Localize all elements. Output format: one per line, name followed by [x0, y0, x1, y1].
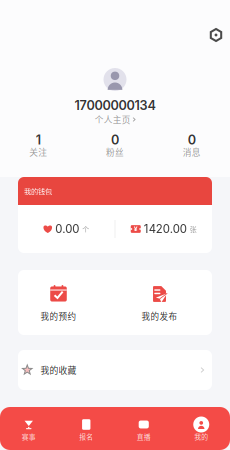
staticText: 直播 — [137, 432, 151, 441]
staticText: 0 — [111, 132, 119, 148]
staticText: 个人主页 — [95, 113, 131, 126]
staticText: 0.00 — [55, 222, 79, 236]
staticText: 我的 — [194, 432, 208, 441]
staticText: 报名 — [79, 432, 93, 441]
staticText: 我的预约 — [40, 310, 76, 322]
button[interactable]: 个人主页 — [91, 115, 139, 124]
staticText: ¥ — [134, 225, 138, 233]
staticText: 我的发布 — [141, 310, 177, 322]
button[interactable]: 赛事 — [0, 416, 57, 440]
button[interactable]: 我的收藏 — [18, 350, 212, 390]
staticText: 粉丝 — [106, 146, 124, 158]
button[interactable]: 我的 — [172, 416, 230, 440]
button[interactable]: 0 — [77, 135, 153, 156]
button[interactable]: 直播 — [115, 416, 172, 440]
staticText: 关注 — [29, 146, 47, 158]
button[interactable]: 我的发布 — [119, 275, 200, 330]
staticText: 赛事 — [22, 432, 36, 441]
button[interactable]: Settings — [204, 23, 228, 47]
button[interactable]: 1 — [0, 135, 77, 156]
button[interactable]: 0.00 — [18, 214, 114, 244]
staticText: 消息 — [183, 146, 201, 158]
staticText: 17000000134 — [74, 98, 155, 113]
staticText: 我的收藏 — [40, 364, 76, 376]
staticText: 我的钱包 — [24, 186, 52, 196]
staticText: 个 — [82, 224, 89, 234]
button[interactable]: 0 — [153, 135, 230, 156]
button[interactable]: 报名 — [57, 416, 115, 440]
staticText: 1 — [36, 132, 41, 148]
button[interactable]: ¥ — [115, 214, 212, 244]
staticText: 张 — [190, 224, 197, 234]
staticText: 0 — [188, 132, 196, 148]
button[interactable]: 我的预约 — [18, 275, 99, 330]
staticText: 1420.00 — [144, 222, 187, 236]
